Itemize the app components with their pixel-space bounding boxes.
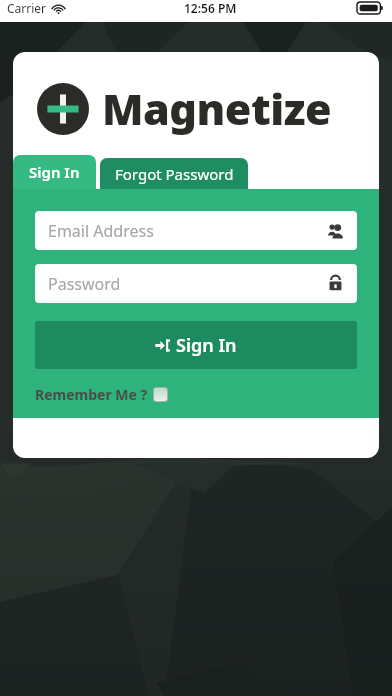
button[interactable]: Remember Me ? (35, 385, 168, 404)
staticText: Magnetize (102, 79, 332, 138)
button[interactable]: Password (35, 264, 357, 303)
button[interactable]: Forgot Password (100, 158, 248, 189)
staticText: Email Address (48, 220, 327, 242)
staticText: Remember Me ? (35, 385, 148, 404)
button[interactable]: Sign In (13, 155, 96, 189)
staticText: Forgot Password (115, 164, 234, 184)
staticText: Sign In (176, 333, 237, 358)
other: Remember me checkbox (153, 387, 168, 402)
staticText: Password (48, 273, 327, 295)
staticText: 12:56 PM (184, 0, 237, 16)
button[interactable]: Email Address (35, 211, 357, 250)
staticText: Carrier (7, 0, 47, 16)
button[interactable]: Sign In (35, 321, 357, 369)
staticText: Sign In (29, 162, 80, 182)
